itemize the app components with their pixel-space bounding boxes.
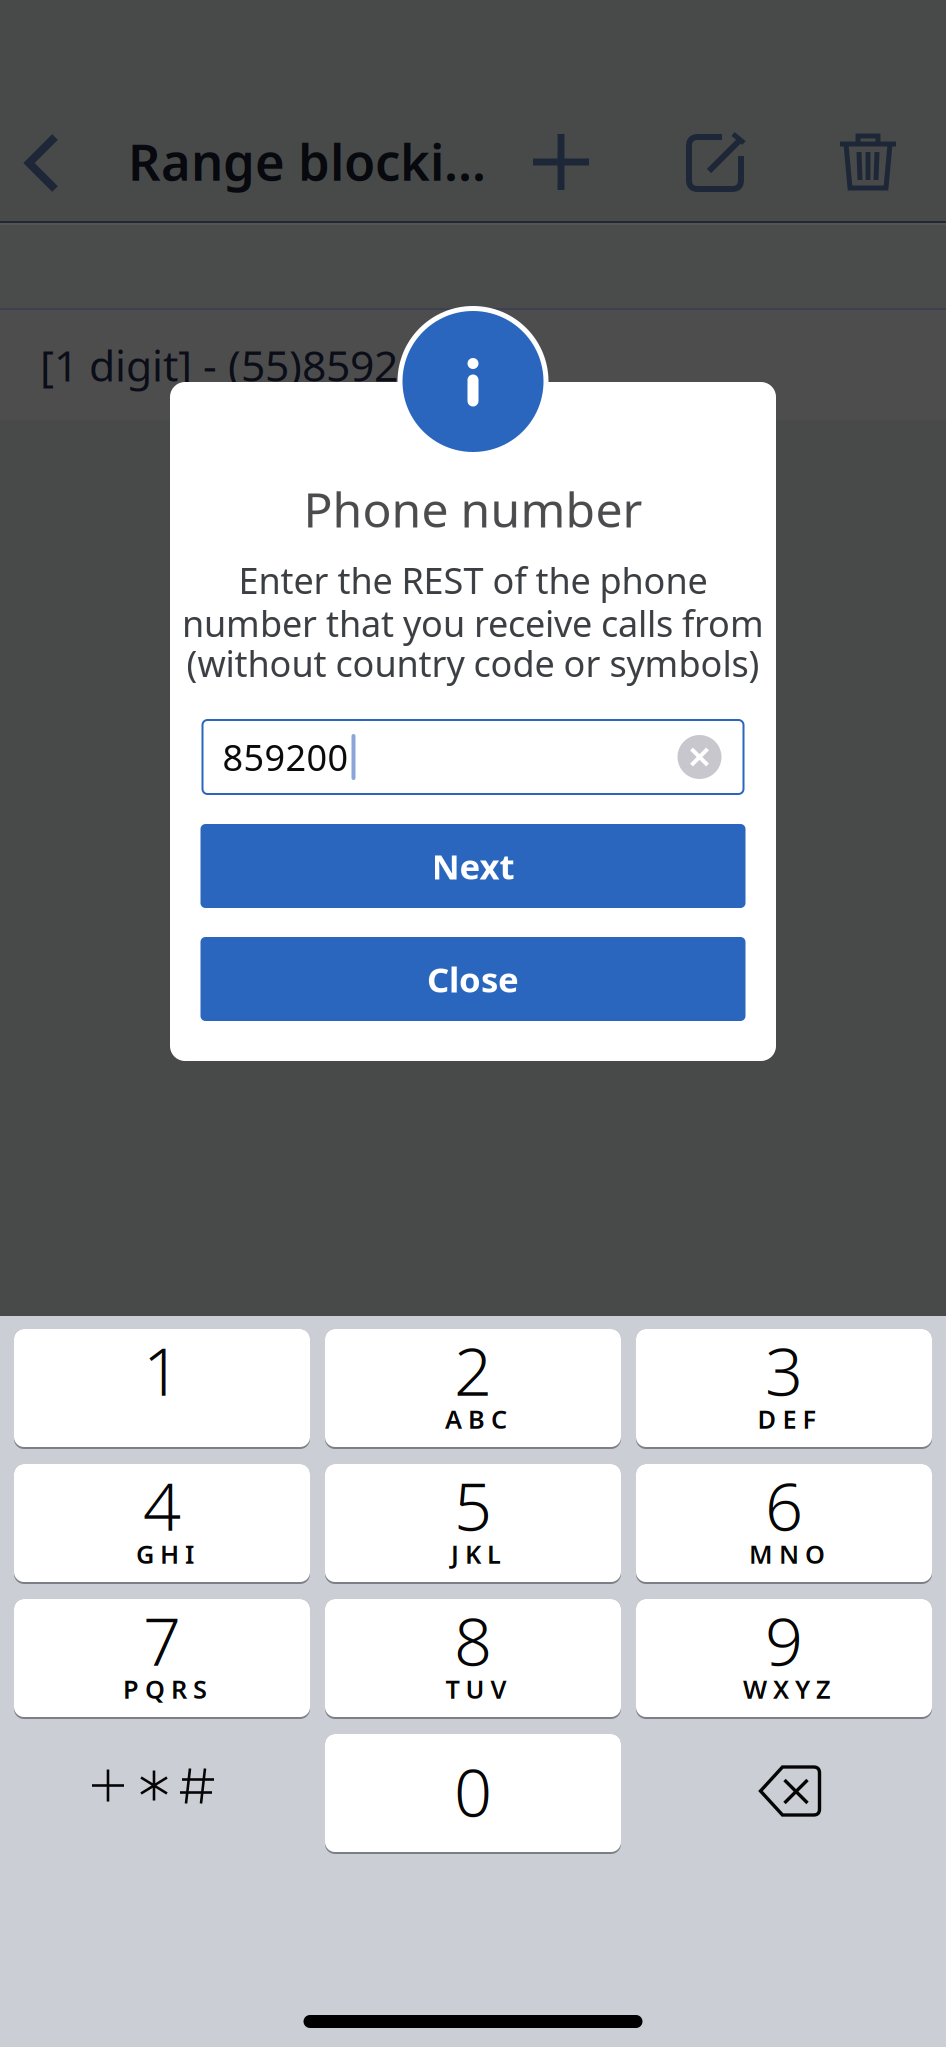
- staticText: 859200: [222, 733, 348, 781]
- button[interactable]: 1: [14, 1330, 310, 1448]
- button[interactable]: 9: [636, 1600, 932, 1718]
- button[interactable]: Close: [200, 937, 745, 1021]
- staticText: GHI: [136, 1537, 194, 1571]
- button[interactable]: 4: [14, 1465, 310, 1583]
- staticText: number that you receive calls from: [182, 599, 764, 647]
- staticText: WXYZ: [743, 1672, 831, 1706]
- staticText: Phone number: [303, 477, 642, 541]
- button[interactable]: Back: [0, 108, 90, 218]
- button[interactable]: Add: [513, 107, 609, 217]
- staticText: 1: [143, 1326, 181, 1414]
- staticText: 3: [765, 1326, 803, 1414]
- staticText: 0: [454, 1747, 492, 1835]
- staticText: (without country code or symbols): [186, 639, 759, 687]
- staticText: 7: [143, 1596, 181, 1684]
- button[interactable]: 5: [325, 1465, 621, 1583]
- button[interactable]: 0: [325, 1735, 621, 1853]
- button[interactable]: 6: [636, 1465, 932, 1583]
- staticText: [1 digit] - (55)8592000: [40, 337, 470, 393]
- staticText: PQRS: [123, 1672, 207, 1706]
- staticText: 6: [765, 1461, 803, 1549]
- staticText: DEF: [757, 1402, 816, 1436]
- button[interactable]: 3: [636, 1330, 932, 1448]
- button[interactable]: 7: [14, 1600, 310, 1718]
- staticText: ABC: [445, 1402, 507, 1436]
- button[interactable]: 8: [325, 1600, 621, 1718]
- staticText: Next: [431, 843, 514, 889]
- staticText: 9: [765, 1596, 803, 1684]
- button[interactable]: Range blocki...: [128, 106, 488, 216]
- staticText: JKL: [451, 1537, 501, 1571]
- button[interactable]: Delete: [820, 106, 916, 216]
- staticText: 2: [454, 1326, 492, 1414]
- staticText: MNO: [749, 1537, 825, 1571]
- button[interactable]: Compose: [667, 108, 763, 218]
- staticText: 5: [454, 1461, 492, 1549]
- button[interactable]: Backspace: [636, 1735, 932, 1853]
- button[interactable]: 2: [325, 1330, 621, 1448]
- staticText: 8: [454, 1596, 492, 1684]
- staticText: 4: [143, 1461, 181, 1549]
- staticText: Enter the REST of the phone: [238, 556, 707, 604]
- button[interactable]: Symbols: [14, 1735, 310, 1853]
- staticText: TUV: [445, 1672, 506, 1706]
- staticText: Close: [427, 956, 519, 1002]
- staticText: Range blocki...: [128, 127, 486, 195]
- button[interactable]: Next: [200, 824, 745, 908]
